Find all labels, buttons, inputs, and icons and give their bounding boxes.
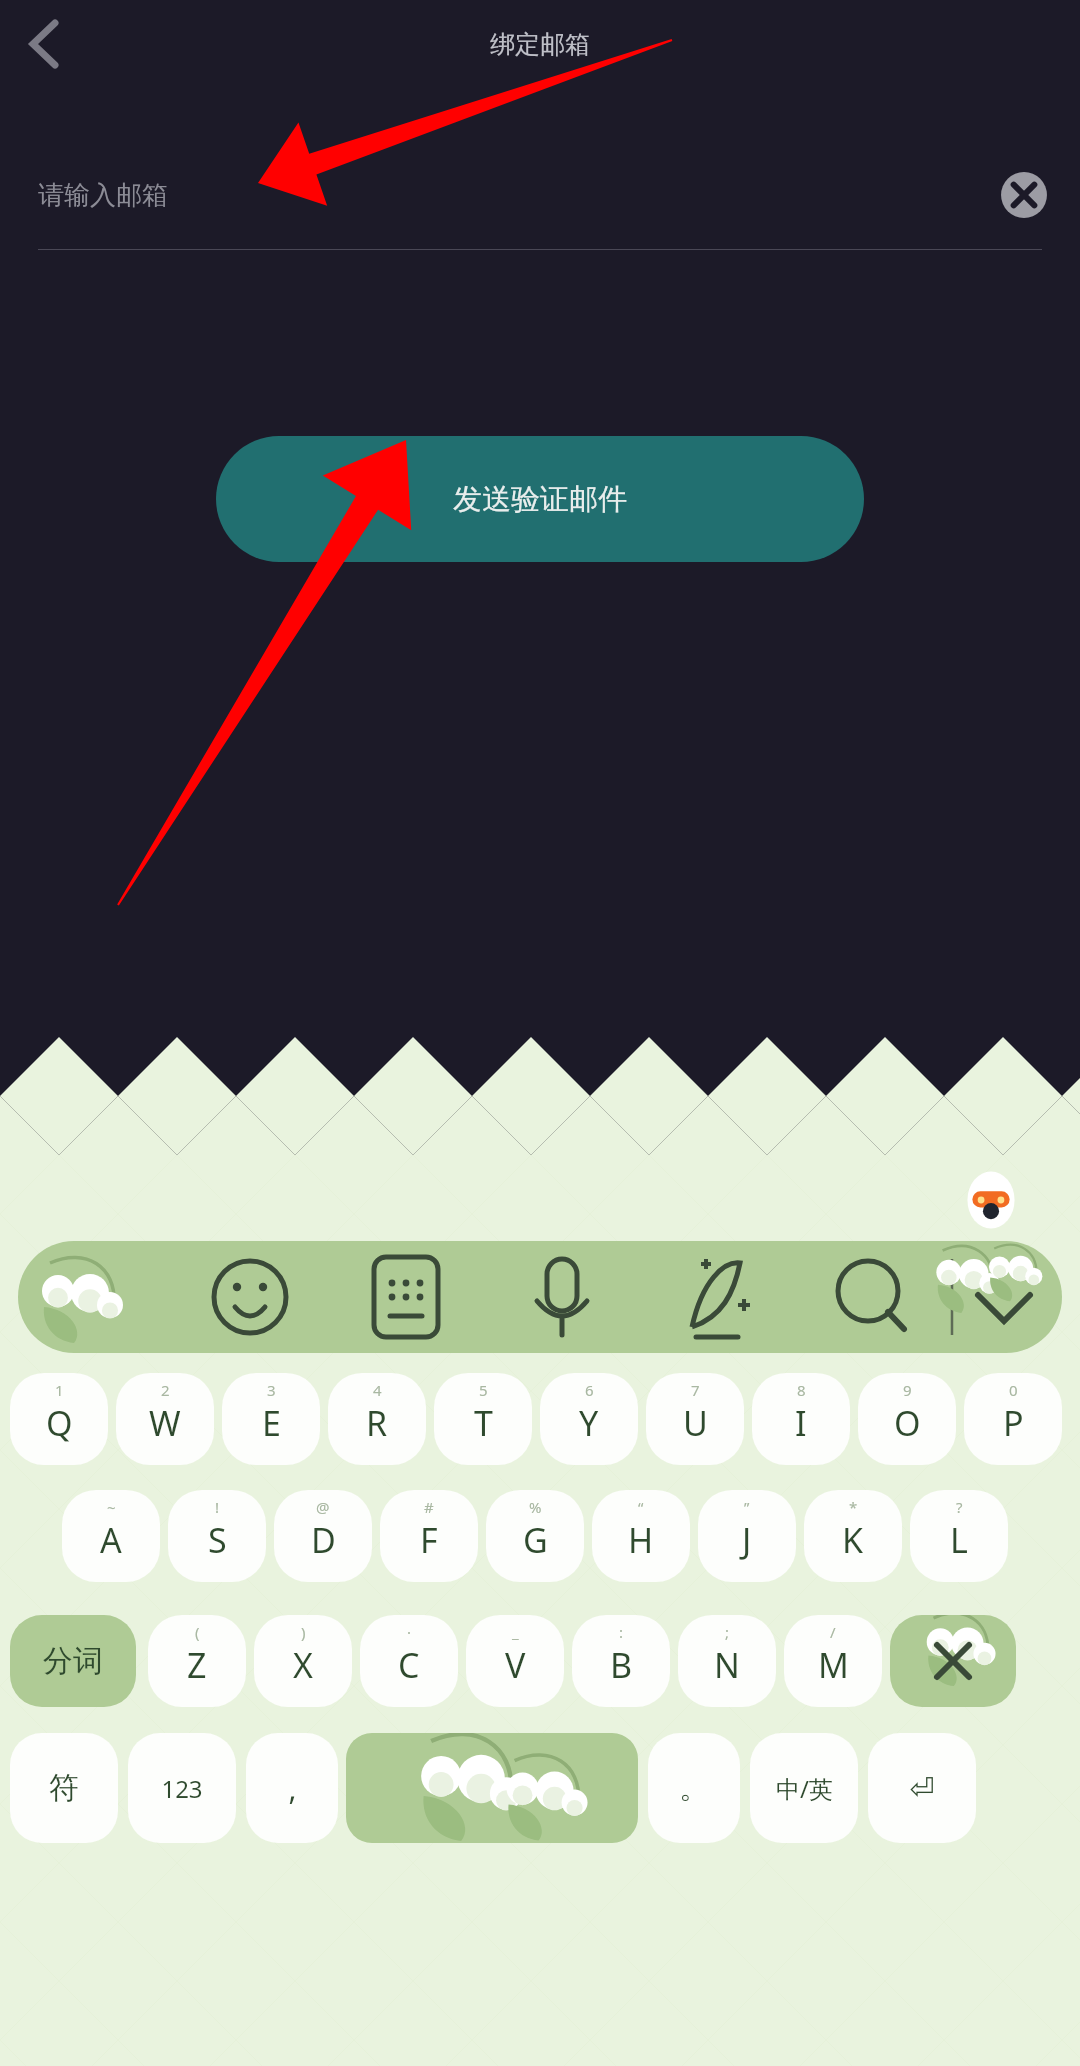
staticText: Q [46, 1400, 73, 1446]
staticText: 请输入邮箱 [38, 179, 168, 212]
staticText: R [366, 1400, 388, 1446]
staticText: V [505, 1642, 526, 1688]
staticText: ? [956, 1497, 963, 1517]
button[interactable]: ; [678, 1615, 776, 1707]
button[interactable]: @ [274, 1490, 372, 1582]
button[interactable]: Numbers [128, 1733, 236, 1843]
staticText: O [894, 1400, 921, 1446]
button[interactable]: : [572, 1615, 670, 1707]
staticText: 符 [49, 1769, 79, 1807]
staticText: ⏎ [909, 1771, 935, 1806]
staticText: L [950, 1517, 968, 1563]
staticText: 9 [903, 1380, 912, 1400]
button[interactable]: · [360, 1615, 458, 1707]
staticText: B [610, 1642, 633, 1688]
button[interactable]: Enter [868, 1733, 976, 1843]
button[interactable]: “ [592, 1490, 690, 1582]
button[interactable]: 5 [434, 1373, 532, 1465]
button[interactable]: # [380, 1490, 478, 1582]
staticText: ; [725, 1622, 730, 1642]
staticText: / [830, 1622, 836, 1642]
staticText: S [208, 1517, 227, 1563]
button[interactable]: Voice input [506, 1241, 645, 1353]
staticText: A [100, 1517, 122, 1563]
button[interactable]: Comma [246, 1733, 338, 1843]
button[interactable]: 6 [540, 1373, 638, 1465]
button[interactable]: ) [254, 1615, 352, 1707]
staticText: 2 [161, 1380, 170, 1400]
staticText: : [619, 1622, 624, 1642]
staticText: D [311, 1517, 336, 1563]
button[interactable]: Period [648, 1733, 740, 1843]
staticText: 0 [1009, 1380, 1018, 1400]
staticText: H [628, 1517, 654, 1563]
button[interactable]: 0 [964, 1373, 1062, 1465]
staticText: 123 [161, 1772, 203, 1805]
staticText: Y [579, 1400, 599, 1446]
staticText: % [529, 1497, 542, 1517]
button[interactable]: 1 [10, 1373, 108, 1465]
button[interactable]: Emoji [228, 1241, 367, 1353]
staticText: C [398, 1642, 420, 1688]
staticText: ( [195, 1622, 200, 1642]
staticText: 3 [267, 1380, 276, 1400]
button[interactable]: Handwriting [645, 1241, 784, 1353]
staticText: P [1003, 1400, 1024, 1446]
staticText: # [424, 1497, 434, 1517]
button[interactable]: ~ [62, 1490, 160, 1582]
staticText: X [293, 1642, 313, 1688]
staticText: J [742, 1517, 752, 1563]
button[interactable]: 分词 [10, 1615, 136, 1707]
button[interactable]: Back [8, 8, 80, 80]
button[interactable]: Language [750, 1733, 858, 1843]
button[interactable]: * [804, 1490, 902, 1582]
button[interactable]: 3 [222, 1373, 320, 1465]
button[interactable]: ? [910, 1490, 1008, 1582]
staticText: ) [301, 1622, 306, 1642]
staticText: G [523, 1517, 548, 1563]
staticText: 发送验证邮件 [453, 481, 627, 518]
staticText: ” [744, 1497, 750, 1517]
button[interactable]: _ [466, 1615, 564, 1707]
staticText: 7 [691, 1380, 700, 1400]
button[interactable]: 8 [752, 1373, 850, 1465]
staticText: K [842, 1517, 864, 1563]
staticText: W [149, 1400, 181, 1446]
button[interactable]: 7 [646, 1373, 744, 1465]
button[interactable]: Search [784, 1241, 923, 1353]
staticText: 中/英 [776, 1772, 833, 1805]
button[interactable]: Symbols [10, 1733, 118, 1843]
button[interactable]: / [784, 1615, 882, 1707]
button[interactable]: 4 [328, 1373, 426, 1465]
staticText: 绑定邮箱 [490, 29, 590, 60]
button[interactable]: ! [168, 1490, 266, 1582]
staticText: @ [316, 1497, 330, 1517]
button[interactable]: % [486, 1490, 584, 1582]
staticText: ~ [107, 1497, 116, 1517]
staticText: I [795, 1400, 807, 1446]
staticText: T [474, 1400, 493, 1446]
button[interactable]: Space [346, 1733, 638, 1843]
button[interactable]: Assistant [960, 1169, 1022, 1231]
staticText: “ [638, 1497, 644, 1517]
button[interactable]: ( [148, 1615, 246, 1707]
button[interactable]: ” [698, 1490, 796, 1582]
staticText: 6 [585, 1380, 594, 1400]
button[interactable]: Keyboard layout [367, 1241, 506, 1353]
staticText: U [683, 1400, 708, 1446]
button[interactable]: Delete [890, 1615, 1016, 1707]
staticText: Z [187, 1642, 207, 1688]
staticText: 8 [797, 1380, 806, 1400]
staticText: 4 [373, 1380, 382, 1400]
button[interactable]: 发送验证邮件 [216, 436, 864, 562]
button[interactable]: Clear [996, 167, 1052, 223]
staticText: ! [215, 1497, 220, 1517]
staticText: * [849, 1497, 858, 1517]
staticText: M [818, 1642, 849, 1688]
button[interactable]: Theme [18, 1241, 228, 1353]
button[interactable]: 2 [116, 1373, 214, 1465]
button[interactable]: Collapse keyboard [923, 1241, 1062, 1353]
button[interactable]: 9 [858, 1373, 956, 1465]
staticText: · [407, 1622, 412, 1642]
staticText: N [714, 1642, 740, 1688]
